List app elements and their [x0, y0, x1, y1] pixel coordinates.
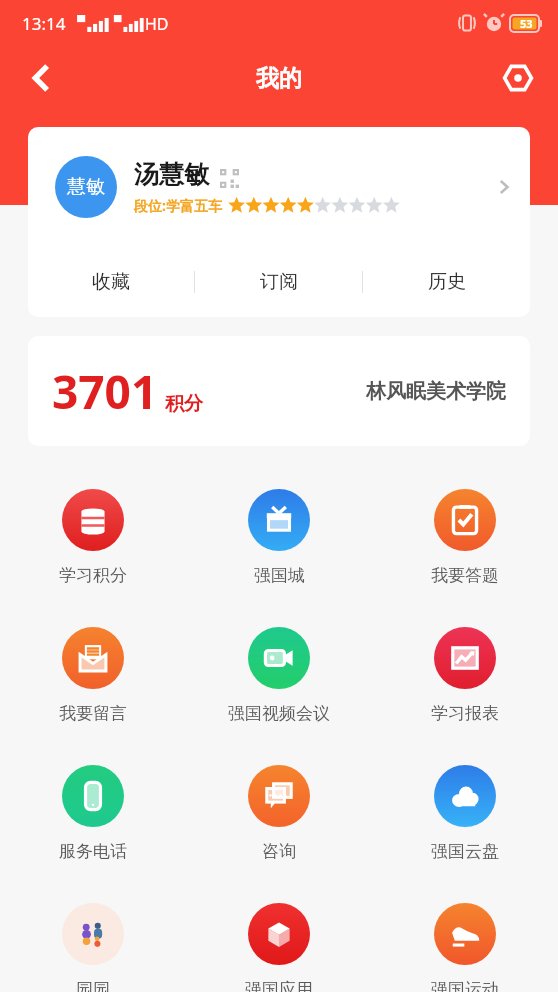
button[interactable]: 我要答题	[372, 476, 558, 614]
staticText: 积分	[165, 392, 203, 416]
button[interactable]: 强国视频会议	[186, 614, 372, 752]
staticText: 我的	[256, 64, 302, 93]
button[interactable]: 订阅	[195, 247, 362, 317]
staticText: 我要答题	[431, 565, 499, 586]
button[interactable]: 强国云盘	[372, 752, 558, 890]
staticText: 13:14	[22, 12, 66, 35]
staticText: 强国应用	[245, 979, 313, 992]
staticText: 学习报表	[431, 703, 499, 724]
staticText: 慧敏	[67, 175, 105, 199]
button[interactable]: 学习积分	[0, 476, 186, 614]
staticText: HD	[145, 13, 169, 35]
staticText: 园园	[76, 979, 110, 992]
button[interactable]: 我要留言	[0, 614, 186, 752]
staticText: 学习积分	[59, 565, 127, 586]
button[interactable]: 强国应用	[186, 890, 372, 992]
staticText: 强国城	[254, 565, 305, 586]
staticText: 强国视频会议	[228, 703, 330, 724]
staticText: 林风眠美术学院	[366, 379, 506, 404]
staticText: 咨询	[262, 841, 296, 862]
button[interactable]: 收藏	[28, 247, 194, 317]
button[interactable]: 园园	[0, 890, 186, 992]
staticText: 段位:学富五车	[134, 196, 222, 215]
button[interactable]: 强国城	[186, 476, 372, 614]
button[interactable]: 3701	[28, 336, 530, 446]
staticText: 我要留言	[59, 703, 127, 724]
button[interactable]: 历史	[363, 247, 530, 317]
staticText: 强国运动	[431, 979, 499, 992]
button[interactable]: Settings	[490, 50, 546, 106]
staticText: 服务电话	[59, 841, 127, 862]
staticText: 强国云盘	[431, 841, 499, 862]
button[interactable]: 服务电话	[0, 752, 186, 890]
button[interactable]: 咨询	[186, 752, 372, 890]
staticText: 汤慧敏	[134, 159, 209, 190]
staticText: 历史	[428, 270, 466, 294]
button[interactable]: Back	[10, 47, 72, 109]
staticText: 收藏	[92, 270, 130, 294]
staticText: 订阅	[260, 270, 298, 294]
staticText: 53	[520, 16, 533, 31]
staticText: 3701	[52, 360, 158, 423]
button[interactable]: 慧敏	[28, 127, 530, 317]
button[interactable]: 学习报表	[372, 614, 558, 752]
button[interactable]: 强国运动	[372, 890, 558, 992]
